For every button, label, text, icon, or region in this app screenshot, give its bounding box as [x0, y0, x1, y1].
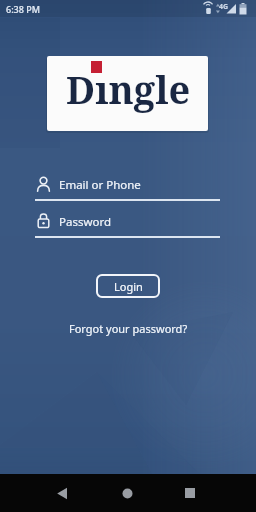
button[interactable] — [44, 474, 80, 512]
button[interactable] — [172, 474, 208, 512]
button[interactable]: Forgot your password? — [0, 318, 256, 338]
staticText: 6:38 PM — [6, 3, 40, 15]
button[interactable]: Password — [35, 209, 220, 239]
button[interactable]: Email or Phone — [35, 172, 220, 202]
button[interactable]: Login — [96, 274, 160, 298]
staticText: 4G — [219, 2, 229, 12]
button[interactable] — [109, 474, 145, 512]
staticText: Dıngle — [66, 63, 191, 115]
staticText: Email or Phone — [59, 177, 141, 193]
staticText: Login — [114, 279, 143, 294]
staticText: Forgot your password? — [69, 321, 188, 336]
staticText: Password — [59, 214, 112, 230]
